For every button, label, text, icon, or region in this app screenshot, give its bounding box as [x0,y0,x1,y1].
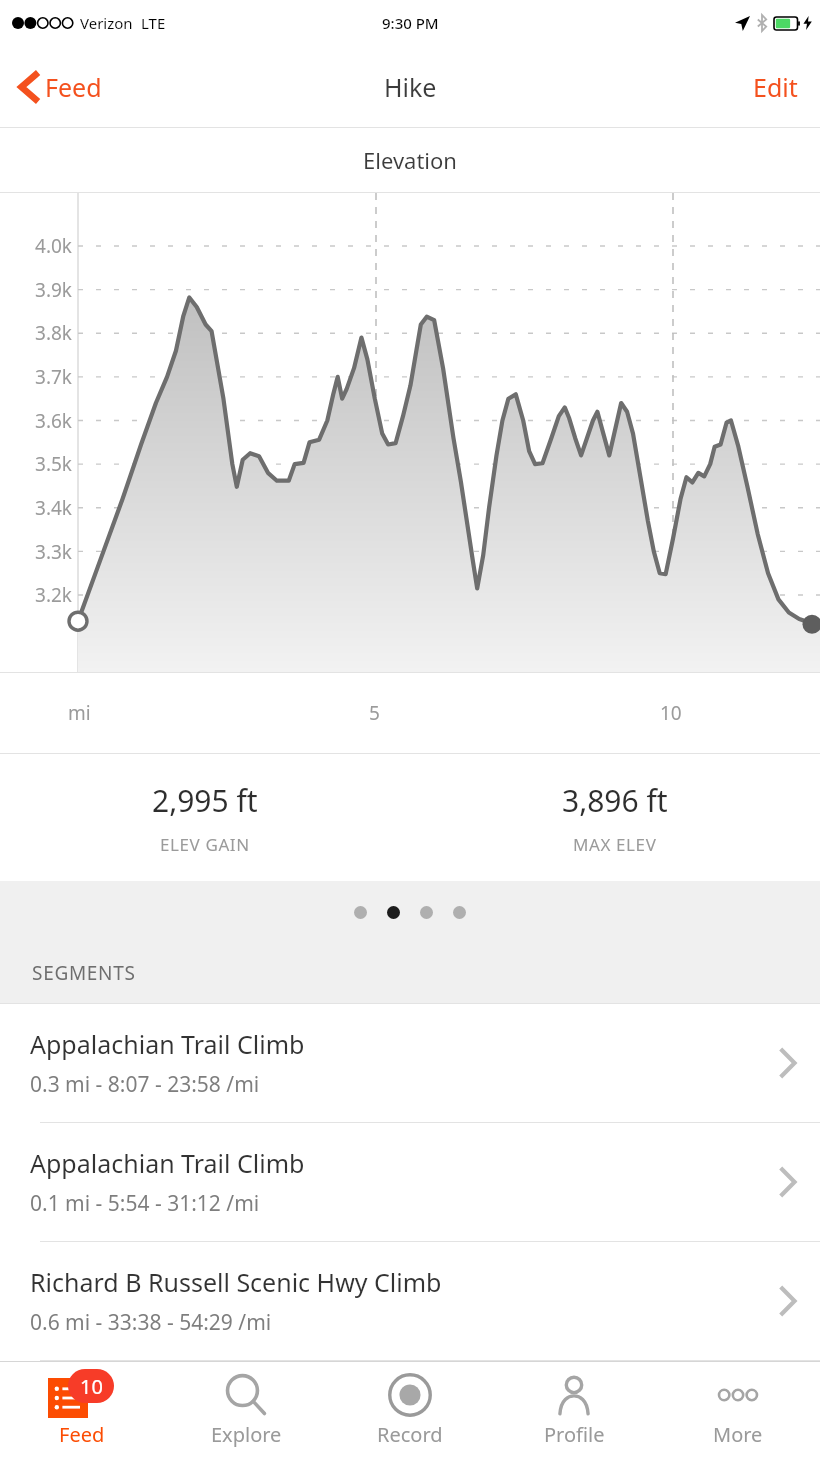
staticText: 3,896 ft [562,780,668,821]
staticText: 9:30 PM [382,13,439,33]
button[interactable] [453,906,466,919]
staticText: 3.6k [12,408,72,434]
staticText: 3.9k [12,277,72,303]
staticText: More [713,1421,763,1448]
staticText: 10 [660,700,682,726]
staticText: Appalachian Trail Climb [30,1027,305,1061]
staticText: Edit [753,70,798,104]
button[interactable] [354,906,367,919]
staticText: 4.0k [12,233,72,259]
button[interactable]: Edit [745,62,806,112]
staticText: 0.3 mi - 8:07 - 23:58 /mi [30,1070,260,1099]
button[interactable]: Profile [492,1362,656,1457]
button[interactable]: Explore [164,1362,328,1457]
staticText: Feed [45,70,102,104]
other: Record [387,1372,433,1418]
button[interactable]: 10 [0,1362,164,1457]
staticText: 3.7k [12,364,72,390]
button[interactable]: Appalachian Trail Climb [0,1123,820,1241]
staticText: Record [377,1421,443,1448]
staticText: Appalachian Trail Climb [30,1146,305,1180]
button[interactable]: Appalachian Trail Climb [0,1004,820,1122]
other: Explore [224,1373,268,1417]
other: Open segment [778,1285,796,1317]
button[interactable]: Richard B Russell Scenic Hwy Climb [0,1242,820,1360]
button[interactable] [387,906,400,919]
staticText: 3.2k [12,582,72,608]
staticText: LTE [141,13,166,33]
staticText: 3.4k [12,495,72,521]
staticText: SEGMENTS [32,960,136,986]
other: Profile [552,1373,596,1417]
staticText: Feed [59,1421,105,1448]
other: More [715,1383,761,1407]
staticText: 0.1 mi - 5:54 - 31:12 /mi [30,1189,260,1218]
staticText: Hike [384,70,437,104]
staticText: 3.3k [12,539,72,565]
button[interactable]: Record [328,1362,492,1457]
staticText: mi [68,700,91,726]
staticText: Elevation [363,145,457,175]
other: Open segment [778,1047,796,1079]
staticText: Richard B Russell Scenic Hwy Climb [30,1265,442,1299]
other: Open segment [778,1166,796,1198]
staticText: MAX ELEV [573,833,657,856]
button[interactable]: More [656,1362,820,1457]
staticText: Verizon [80,13,133,33]
staticText: 5 [369,700,380,726]
staticText: Profile [544,1421,605,1448]
staticText: 3.8k [12,320,72,346]
staticText: 10 [80,1373,103,1400]
staticText: 3.5k [12,451,72,477]
staticText: 0.6 mi - 33:38 - 54:29 /mi [30,1308,272,1337]
button[interactable] [420,906,433,919]
button[interactable]: Feed [14,62,108,112]
staticText: ELEV GAIN [160,833,250,856]
staticText: Explore [211,1421,282,1448]
staticText: 2,995 ft [152,780,258,821]
